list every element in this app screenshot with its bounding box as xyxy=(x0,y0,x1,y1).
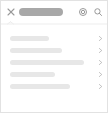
button[interactable]: Search field xyxy=(19,8,63,16)
button[interactable] xyxy=(0,68,108,80)
button[interactable] xyxy=(0,80,108,92)
button[interactable] xyxy=(0,56,108,68)
button[interactable]: Close xyxy=(4,5,17,18)
button[interactable]: Search by image xyxy=(76,5,90,19)
button[interactable]: Search xyxy=(91,5,105,19)
button[interactable] xyxy=(0,32,108,44)
button[interactable] xyxy=(0,44,108,56)
